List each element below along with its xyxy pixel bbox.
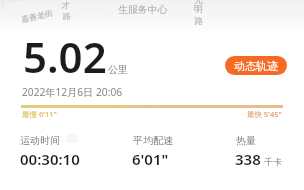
staticText: 光 (194, 0, 203, 5)
staticText: 平均配速 (133, 134, 173, 147)
staticText: 动态轨迹 (234, 59, 278, 73)
staticText: 嘉善老街 (20, 8, 54, 24)
staticText: 运动时间 (20, 134, 60, 147)
staticText: 00:30:10 (20, 149, 80, 169)
staticText: 路 (63, 11, 71, 21)
staticText: 6'01" (132, 149, 169, 169)
staticText: 5.02 (23, 28, 107, 85)
staticText: 公里 (108, 63, 128, 76)
staticText: 千卡 (264, 156, 282, 167)
staticText: 最慢 6'11" (22, 109, 57, 119)
button[interactable]: 动态轨迹 (225, 56, 287, 75)
staticText: 热量 (236, 134, 256, 147)
staticText: 路 (194, 15, 203, 26)
staticText: 最快 5'45" (247, 109, 282, 119)
staticText: 338 (235, 149, 261, 169)
staticText: 2022年12月6日 20:06 (22, 85, 123, 99)
staticText: 明 (194, 3, 203, 14)
staticText: 才 (62, 0, 70, 10)
staticText: 生服务中心 (118, 3, 168, 15)
